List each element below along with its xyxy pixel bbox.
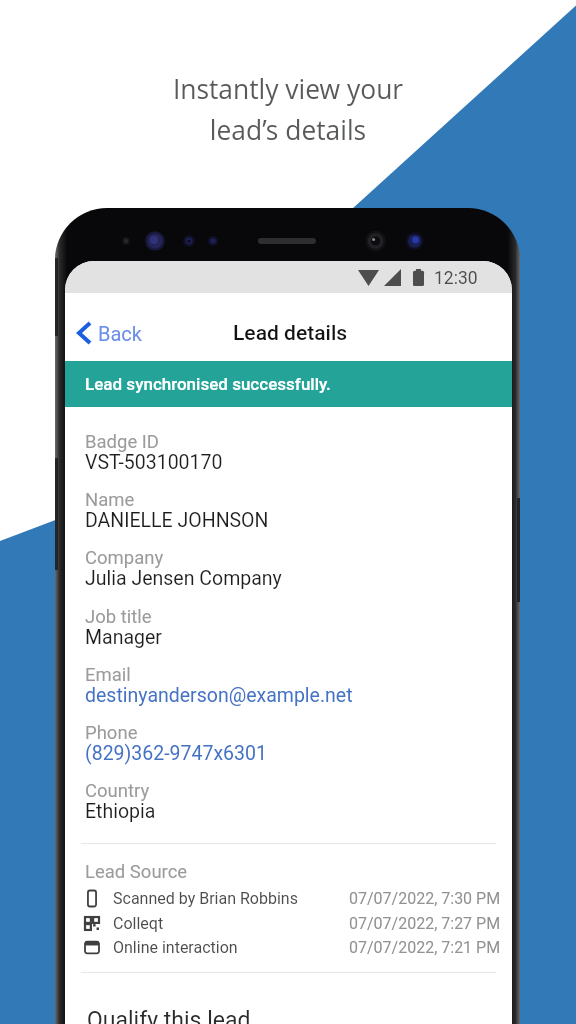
staticText: DANIELLE JOHNSON [85,509,269,532]
staticText: Email [85,664,131,686]
staticText: Job title [85,606,152,628]
button[interactable]: Back [73,303,132,363]
button[interactable]: Scanned by Brian Robbins [65,887,512,912]
button[interactable]: Qualify this lead [87,1007,251,1024]
staticText: Manager [85,626,162,649]
staticText: Scanned by Brian Robbins [113,889,298,908]
staticText: Company [85,547,164,569]
staticText: 07/07/2022, 7:21 PM [349,938,501,957]
staticText: Instantly view your [0,71,576,107]
staticText: Lead synchronised successfully. [85,374,331,394]
staticText: Back [98,322,142,345]
staticText: 07/07/2022, 7:30 PM [349,889,501,908]
staticText: Badge ID [85,431,159,453]
staticText: Lead details [233,321,348,346]
staticText: 07/07/2022, 7:27 PM [349,914,501,933]
staticText: VST-503100170 [85,451,223,474]
staticText: Name [85,489,135,511]
staticText: Colleqt [113,914,164,933]
staticText: 12:30 [434,268,478,289]
staticText: lead’s details [0,112,576,148]
button[interactable]: Colleqt [65,912,512,937]
button[interactable]: Online interaction [65,936,512,961]
staticText: Country [85,780,150,802]
staticText: (829)362-9747x6301 [85,742,267,765]
staticText: Julia Jensen Company [85,567,282,590]
staticText: Lead Source [85,861,188,883]
staticText: Ethiopia [85,800,156,823]
staticText: Online interaction [113,938,238,957]
staticText: destinyanderson@example.net [85,684,353,707]
staticText: Phone [85,722,138,744]
